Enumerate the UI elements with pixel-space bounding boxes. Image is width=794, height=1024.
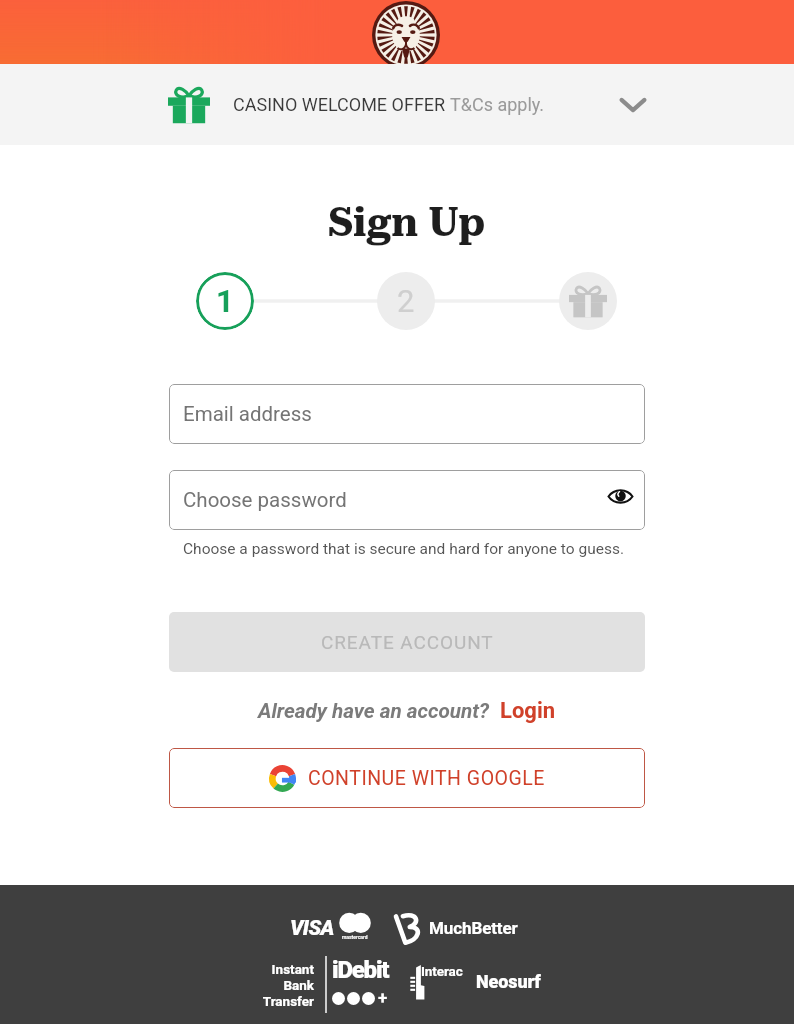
staticText: Login: [500, 698, 556, 724]
staticText: VISA: [290, 916, 334, 938]
staticText: Sign Up: [328, 199, 486, 246]
staticText: Instant: [271, 961, 314, 977]
staticText: MuchBetter: [429, 918, 518, 938]
staticText: Bank: [283, 977, 314, 993]
button[interactable]: 1: [196, 272, 254, 330]
staticText: 1: [216, 283, 234, 319]
staticText: Transfer: [262, 993, 314, 1009]
staticText: Neosurf: [476, 971, 541, 992]
staticText: Choose password: [183, 488, 347, 512]
button[interactable]: Show password: [603, 479, 637, 513]
staticText: T&Cs apply.: [450, 94, 545, 115]
button[interactable]: CREATE ACCOUNT: [169, 612, 645, 672]
staticText: mastercard: [342, 934, 368, 940]
staticText: CREATE ACCOUNT: [321, 631, 494, 653]
button[interactable]: Expand offer details: [612, 84, 654, 126]
button[interactable]: Login: [500, 698, 556, 724]
staticText: Choose a password that is secure and har…: [183, 540, 624, 558]
button[interactable]: 2: [377, 272, 435, 330]
staticText: Email address: [183, 402, 312, 426]
button[interactable]: Email address: [169, 384, 645, 444]
staticText: Already have an account?: [258, 699, 490, 723]
staticText: Interac: [421, 963, 463, 979]
staticText: +: [378, 988, 388, 1008]
button[interactable]: Bonus step: [559, 272, 617, 330]
staticText: 2: [397, 283, 415, 319]
button[interactable]: CONTINUE WITH GOOGLE: [169, 748, 645, 808]
staticText: CASINO WELCOME OFFER: [233, 94, 450, 115]
staticText: iDebit: [332, 956, 389, 984]
button[interactable]: Choose password: [169, 470, 645, 530]
staticText: CONTINUE WITH GOOGLE: [308, 767, 545, 790]
button[interactable]: CASINO WELCOME OFFER: [0, 64, 794, 145]
